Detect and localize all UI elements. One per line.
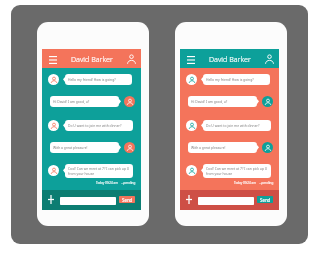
staticText: Do U want to join me with dinner?	[206, 123, 260, 128]
button[interactable]: Message input	[198, 197, 254, 205]
staticText: Hello my friend! How is going?	[206, 77, 254, 82]
button[interactable]: Contact avatar	[48, 74, 59, 85]
staticText: David Barker	[209, 54, 251, 64]
button[interactable]: Contact avatar	[186, 120, 197, 131]
staticText: Today 09:24 am ...pending	[96, 181, 136, 185]
button[interactable]: With a great pleasure!	[188, 142, 257, 153]
button[interactable]: With a great pleasure!	[50, 142, 119, 153]
button[interactable]: Add attachment	[183, 194, 194, 205]
staticText: Cool! Can we meet at 7? I can pick up U …	[206, 166, 268, 176]
button[interactable]: Send	[257, 196, 273, 203]
staticText: With a great pleasure!	[191, 145, 226, 150]
button[interactable]: Message input	[60, 197, 116, 205]
button[interactable]: Profile	[263, 52, 276, 65]
button[interactable]: Hello my friend! How is going?	[203, 74, 270, 85]
button[interactable]: Profile	[125, 52, 138, 65]
button[interactable]: Menu	[47, 54, 59, 65]
button[interactable]: Contact avatar	[262, 142, 273, 153]
button[interactable]: Contact avatar	[48, 120, 59, 131]
button[interactable]: Cool! Can we meet at 7? I can pick up U …	[65, 164, 133, 178]
button[interactable]: Send	[119, 196, 135, 203]
staticText: With a great pleasure!	[53, 145, 88, 150]
button[interactable]: Contact avatar	[186, 74, 197, 85]
staticText: David Barker	[71, 54, 113, 64]
staticText: Today 09:24 am ...pending	[234, 181, 274, 185]
button[interactable]: Cool! Can we meet at 7? I can pick up U …	[203, 164, 271, 178]
staticText: Send	[122, 197, 133, 203]
button[interactable]: Do U want to join me with dinner?	[203, 120, 271, 131]
button[interactable]: Do U want to join me with dinner?	[65, 120, 133, 131]
button[interactable]: Add attachment	[45, 194, 56, 205]
staticText: Do U want to join me with dinner?	[68, 123, 122, 128]
button[interactable]: Contact avatar	[262, 96, 273, 107]
button[interactable]: Hi David! I am good, u?	[188, 96, 257, 107]
staticText: Hi David! I am good, u?	[191, 99, 228, 104]
button[interactable]: Contact avatar	[124, 142, 135, 153]
button[interactable]: Contact avatar	[124, 96, 135, 107]
button[interactable]: Hi David! I am good, u?	[50, 96, 119, 107]
button[interactable]: Contact avatar	[186, 165, 197, 176]
staticText: Send	[260, 197, 271, 203]
staticText: Cool! Can we meet at 7? I can pick up U …	[68, 166, 130, 176]
button[interactable]: Menu	[185, 54, 197, 65]
staticText: Hello my friend! How is going?	[68, 77, 116, 82]
button[interactable]: Hello my friend! How is going?	[65, 74, 132, 85]
button[interactable]: Contact avatar	[48, 165, 59, 176]
staticText: Hi David! I am good, u?	[53, 99, 90, 104]
